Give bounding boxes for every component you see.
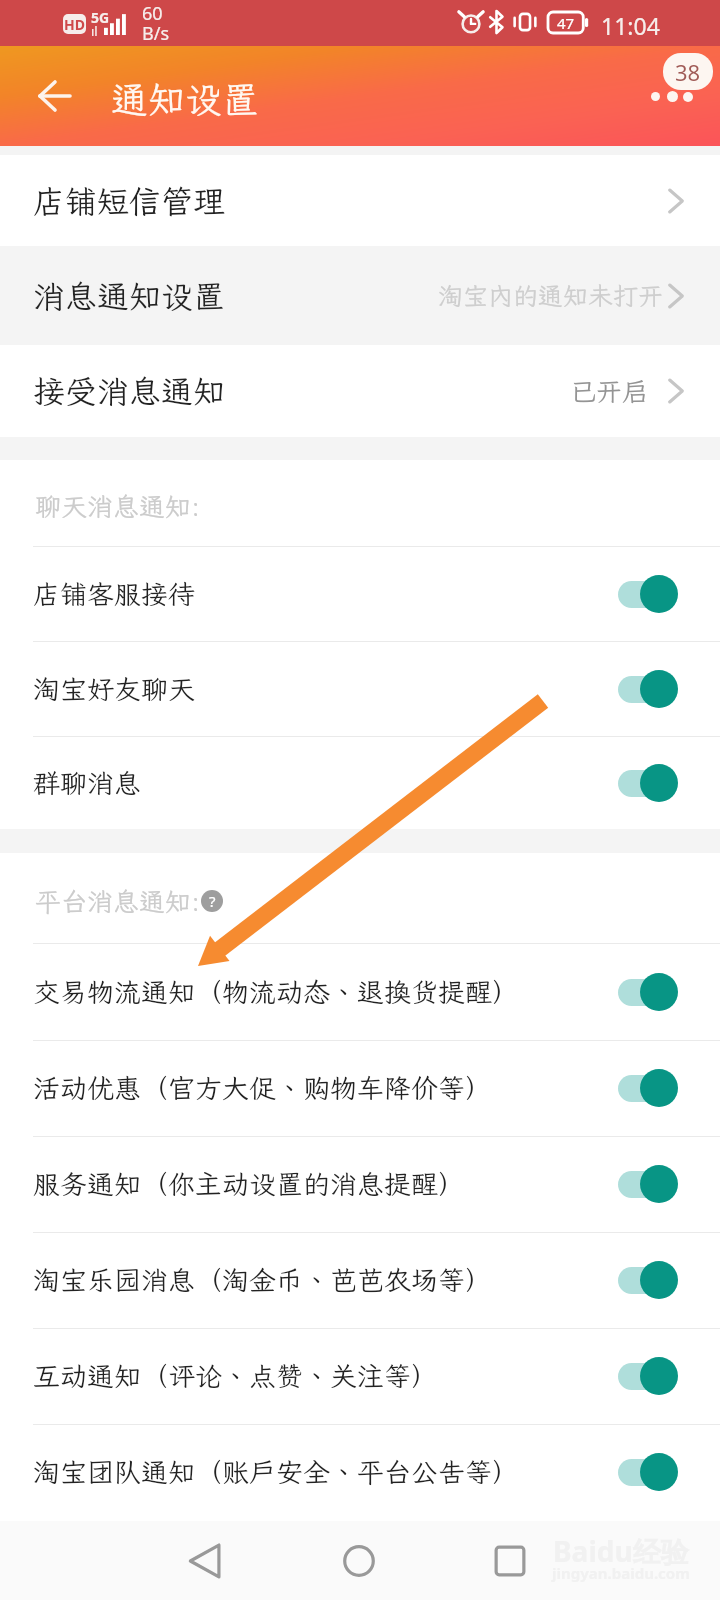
staticText: jingyan.baidu.com [552,1563,690,1583]
staticText: 淘宝好友聊天 [33,671,195,707]
button[interactable]: More options [651,91,693,102]
staticText: ? [209,891,216,911]
staticText: 聊天消息通知: [35,489,201,523]
button[interactable]: Toggle [618,970,678,1014]
button[interactable]: 交易物流通知（物流动态、退换货提醒） [0,943,720,1040]
button[interactable]: 淘宝乐园消息（淘金币、芭芭农场等） [0,1232,720,1328]
staticText: 47 [557,13,575,33]
button[interactable]: Help [201,890,223,912]
staticText: ıl [91,22,98,40]
button[interactable]: Toggle [618,1450,678,1494]
staticText: 11:04 [601,10,660,41]
button[interactable]: Toggle [618,667,678,711]
staticText: HD [64,15,85,34]
button[interactable]: Toggle [618,1066,678,1110]
staticText: 接受消息通知 [33,370,226,412]
staticText: 淘宝内的通知未打开 [438,279,664,312]
button[interactable]: 店铺客服接待 [0,546,720,641]
staticText: 消息通知设置 [33,275,226,317]
staticText: 38 [675,57,701,87]
staticText: 店铺短信管理 [33,180,226,222]
staticText: 交易物流通知（物流动态、退换货提醒） [33,974,519,1010]
staticText: 活动优惠（官方大促、购物车降价等） [33,1070,492,1106]
button[interactable]: Toggle [618,1162,678,1206]
staticText: 5G [91,8,110,27]
staticText: 服务通知（你主动设置的消息提醒） [33,1166,465,1202]
button[interactable]: Back [34,76,76,116]
staticText: 淘宝团队通知（账户安全、平台公告等） [33,1454,519,1490]
button[interactable]: Toggle [618,761,678,805]
button[interactable]: Toggle [618,1354,678,1398]
staticText: Baidu经验 [553,1532,689,1570]
button[interactable]: 服务通知（你主动设置的消息提醒） [0,1136,720,1232]
button[interactable]: 群聊消息 [0,736,720,829]
button[interactable]: 淘宝好友聊天 [0,641,720,736]
staticText: 互动通知（评论、点赞、关注等） [33,1358,438,1394]
button[interactable]: Toggle [618,1258,678,1302]
button[interactable]: 接受消息通知 [0,345,720,437]
button[interactable]: 淘宝团队通知（账户安全、平台公告等） [0,1424,720,1520]
button[interactable]: Back [187,1540,229,1582]
button[interactable]: Home [338,1540,380,1582]
button[interactable]: 38 [663,53,713,90]
button[interactable]: Toggle [618,572,678,616]
staticText: 平台消息通知: [35,884,201,918]
staticText: 店铺客服接待 [33,576,195,612]
staticText: 群聊消息 [33,765,141,801]
button[interactable]: 消息通知设置 [0,246,720,345]
button[interactable]: Recents [489,1540,531,1582]
button[interactable]: 店铺短信管理 [0,155,720,246]
staticText: 60 [142,1,163,26]
button[interactable]: 活动优惠（官方大促、购物车降价等） [0,1040,720,1136]
staticText: 通知设置 [111,75,259,124]
staticText: 已开启 [570,374,649,408]
staticText: B/s [142,21,170,46]
button[interactable]: 互动通知（评论、点赞、关注等） [0,1328,720,1424]
staticText: 淘宝乐园消息（淘金币、芭芭农场等） [33,1262,492,1298]
